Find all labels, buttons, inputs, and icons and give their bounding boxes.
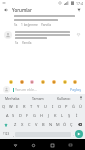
staticText: , [13,132,14,137]
button[interactable]: Emoji [19,79,24,84]
staticText: Ö [63,122,67,127]
button[interactable]: O [56,103,63,110]
staticText: N [49,122,53,127]
staticText: Tamam [32,96,44,101]
button[interactable]: Shift [1,121,11,128]
staticText: E [16,104,19,109]
staticText: 5s [15,41,19,45]
staticText: T [30,104,33,109]
button[interactable]: Backspace [75,121,84,128]
staticText: Y [37,104,40,109]
button[interactable]: Kullanıcı [51,94,77,102]
staticText: V [35,122,38,127]
button[interactable]: X [19,121,26,128]
button[interactable]: Paylaş [69,86,82,93]
button[interactable]: Ö [61,121,68,128]
button[interactable]: Z [11,121,19,128]
button[interactable]: Emoji [29,79,34,84]
button[interactable]: Ğ [70,103,77,110]
staticText: K [54,113,57,118]
button[interactable]: Ü [77,103,84,110]
staticText: H [40,113,43,118]
button[interactable]: Emoji [40,79,45,84]
button[interactable]: R [21,103,28,110]
staticText: Ğ [72,104,75,109]
button[interactable]: C [26,121,33,128]
button[interactable]: U [42,103,49,110]
button[interactable]: Emoji [62,79,67,84]
button[interactable]: Home [29,141,37,149]
button[interactable]: Merhaba [0,94,25,102]
button[interactable]: D [17,112,24,119]
button[interactable]: Ş [66,112,73,119]
button[interactable]: H [38,112,45,119]
button[interactable]: S [10,112,17,119]
button[interactable]: M [54,121,61,128]
staticText: Q [2,104,6,109]
staticText: Merhaba [5,96,20,101]
button[interactable]: ?123 [2,130,11,138]
button[interactable]: A [4,112,10,119]
button[interactable]: Q [1,103,7,110]
button[interactable]: F [24,112,31,119]
staticText: U [44,104,47,109]
staticText: G [33,113,36,118]
staticText: X [21,122,24,127]
button[interactable]: 5s [0,30,85,46]
button[interactable]: Back [11,141,19,149]
button[interactable]: Send [75,130,83,138]
button[interactable]: J [45,112,52,119]
staticText: Yanıtla [41,23,51,27]
button[interactable]: N [47,121,54,128]
staticText: 5s [14,23,18,27]
staticText: R [23,104,26,109]
button[interactable]: W [7,103,14,110]
button[interactable]: , [11,130,15,138]
button[interactable]: Emoji [51,79,56,84]
staticText: F [26,113,29,118]
staticText: . [73,132,74,137]
button[interactable]: Back [3,7,9,13]
button[interactable]: Emoji [8,79,13,84]
staticText: Yorumlar [12,7,32,13]
staticText: 17:4 [76,1,83,6]
staticText: Yorum ekle... [15,87,69,92]
button[interactable]: Y [35,103,42,110]
staticText: Ş [68,113,71,118]
button[interactable]: V [33,121,40,128]
staticText: Ç [70,122,73,127]
staticText: W [9,104,13,109]
staticText: A [6,113,9,118]
staticText: Paylaş [70,87,81,92]
staticText: B [42,122,45,127]
button[interactable]: Tamam [25,94,51,102]
staticText: D [19,113,22,118]
staticText: İ [76,113,78,118]
button[interactable]: L [59,112,66,119]
staticText: L [61,113,64,118]
button[interactable]: T [28,103,35,110]
staticText: Z [14,122,17,127]
staticText: I [52,104,54,109]
button[interactable]: . [71,130,75,138]
button[interactable]: Filter [76,7,82,13]
button[interactable]: Hide keyboard [66,141,74,149]
button[interactable]: Voice input [77,94,85,102]
staticText: O [58,104,62,109]
button[interactable]: K [52,112,59,119]
button[interactable]: E [14,103,21,110]
button[interactable]: İ [73,112,80,119]
button[interactable]: Ç [68,121,75,128]
button[interactable]: B [40,121,47,128]
staticText: Kullanıcı [57,96,71,101]
staticText: P [65,104,68,109]
button[interactable]: P [63,103,70,110]
button[interactable]: G [31,112,38,119]
button[interactable]: Emoji [72,79,77,84]
staticText: ?123 [3,132,10,136]
button[interactable]: I [49,103,56,110]
staticText: 1 beğenme [21,23,38,27]
button[interactable]: Recents [48,141,56,149]
button[interactable]: Like [75,31,81,37]
